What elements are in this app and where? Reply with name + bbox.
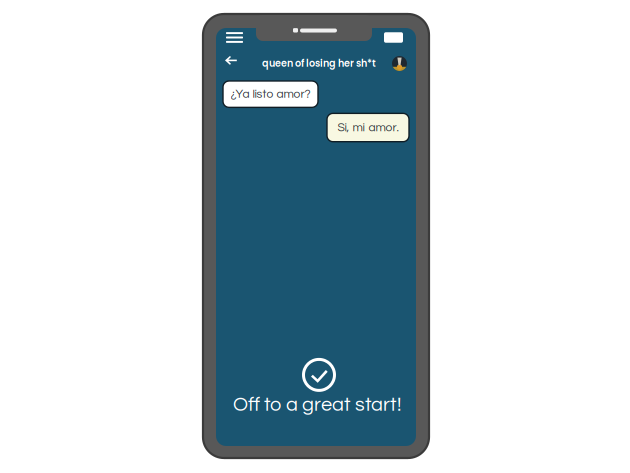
button[interactable]: Menu <box>226 32 243 43</box>
staticText: Off to a great start! <box>233 394 401 415</box>
button[interactable]: Profile <box>392 56 407 71</box>
staticText: queen of losing her sh*t <box>262 57 376 70</box>
staticText: Si, mi amor. <box>337 121 398 134</box>
button[interactable]: Back <box>224 59 237 68</box>
staticText: ¿Ya listo amor? <box>230 88 310 100</box>
